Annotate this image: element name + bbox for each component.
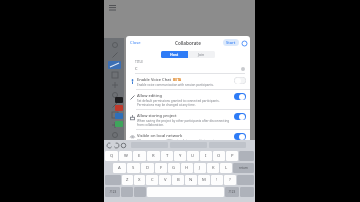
button[interactable]: S — [127, 163, 140, 173]
button[interactable]: Color swatch — [115, 105, 123, 111]
button[interactable]: J — [194, 163, 206, 173]
button[interactable]: Tool 2 — [109, 71, 120, 79]
staticText: .?123 — [109, 190, 117, 194]
button[interactable]: Tool 4 — [109, 91, 120, 99]
staticText: Collaborate — [175, 40, 201, 46]
staticText: O — [217, 153, 221, 159]
button[interactable]: W — [119, 151, 132, 161]
button[interactable]: Allow editing — [126, 90, 250, 110]
staticText: TITLE — [135, 60, 144, 64]
button[interactable]: K — [207, 163, 219, 173]
button[interactable]: Z — [122, 175, 133, 185]
button[interactable]: P — [226, 151, 238, 161]
staticText: X — [138, 177, 141, 183]
button[interactable]: Toggle off — [234, 77, 246, 84]
button[interactable]: .?123 — [225, 187, 239, 197]
staticText: Close — [130, 40, 141, 46]
button[interactable]: Q — [105, 151, 118, 161]
button[interactable]: Visible on local network — [126, 130, 250, 141]
button[interactable]: C — [146, 175, 158, 185]
button[interactable]: More options — [241, 40, 247, 46]
button[interactable]: U — [187, 151, 199, 161]
button[interactable]: Toggle on — [234, 133, 246, 140]
button[interactable]: .?123 — [105, 187, 120, 197]
button[interactable]: Color swatch — [115, 113, 123, 119]
staticText: C — [135, 66, 138, 71]
button[interactable]: ? — [224, 175, 236, 185]
staticText: T — [166, 153, 169, 159]
button[interactable]: N — [185, 175, 197, 185]
button[interactable]: Host — [161, 51, 188, 58]
staticText: BETA — [173, 77, 182, 82]
staticText: Enable Voice Chat — [137, 77, 171, 82]
staticText: Host — [170, 52, 179, 57]
button[interactable]: Tool 6 — [109, 111, 120, 119]
button[interactable]: G — [168, 163, 180, 173]
button[interactable]: return — [233, 163, 254, 173]
button[interactable]: X — [134, 175, 145, 185]
button[interactable]: Allow storing project — [126, 110, 250, 130]
button[interactable]: Tool 8 — [109, 131, 120, 139]
button[interactable]: T — [161, 151, 173, 161]
staticText: N — [189, 177, 193, 183]
button[interactable]: A — [113, 163, 126, 173]
button[interactable]: Enable Voice Chat — [126, 74, 250, 90]
button[interactable]: V — [159, 175, 171, 185]
button[interactable]: Start — [226, 40, 236, 45]
button[interactable]: Tool 1 — [109, 51, 120, 59]
button[interactable]: Tool 3 — [109, 81, 120, 89]
staticText: Y — [179, 153, 182, 159]
staticText: C — [151, 177, 154, 183]
staticText: ? — [229, 177, 231, 183]
button[interactable]: O — [213, 151, 225, 161]
staticText: Allow storing project — [137, 113, 177, 118]
staticText: R — [152, 153, 155, 159]
button[interactable]: I — [200, 151, 212, 161]
staticText: D — [146, 165, 150, 171]
button[interactable]: Clear — [240, 66, 245, 71]
button[interactable]: Toggle on — [234, 113, 246, 120]
button[interactable]: H — [181, 163, 193, 173]
button[interactable]: Color swatch — [115, 121, 123, 127]
staticText: When saving the project by other partici… — [137, 119, 232, 127]
button[interactable]: F — [155, 163, 167, 173]
button[interactable]: Selected tool — [108, 61, 121, 69]
staticText: P — [231, 153, 234, 159]
button[interactable]: B — [172, 175, 184, 185]
button[interactable]: D — [141, 163, 154, 173]
button[interactable]: Redo — [113, 142, 120, 149]
button[interactable]: Tool 0 — [109, 41, 120, 49]
staticText: U — [191, 153, 195, 159]
staticText: Z — [126, 177, 129, 183]
staticText: Allow editing — [137, 93, 162, 98]
button[interactable]: Close — [130, 40, 141, 46]
staticText: J — [199, 165, 201, 171]
button[interactable]: L — [220, 163, 232, 173]
button[interactable]: R — [147, 151, 160, 161]
button[interactable]: E — [133, 151, 146, 161]
button[interactable]: Join — [188, 51, 215, 58]
button[interactable]: Y — [174, 151, 186, 161]
button[interactable]: Tool 5 — [109, 101, 120, 109]
button[interactable]: Paste — [120, 142, 127, 149]
button[interactable]: M — [198, 175, 210, 185]
button[interactable]: Menu — [107, 2, 117, 12]
button[interactable]: Tool 7 — [109, 121, 120, 129]
staticText: Allow users on same WiFi network to see … — [137, 139, 219, 141]
button[interactable]: Color swatch — [115, 97, 123, 103]
button[interactable]: Toggle on — [234, 93, 246, 100]
button[interactable]: ! — [211, 175, 223, 185]
staticText: Enable voice communication with session … — [137, 83, 214, 87]
staticText: V — [164, 177, 167, 183]
button[interactable]: Undo — [106, 142, 113, 149]
